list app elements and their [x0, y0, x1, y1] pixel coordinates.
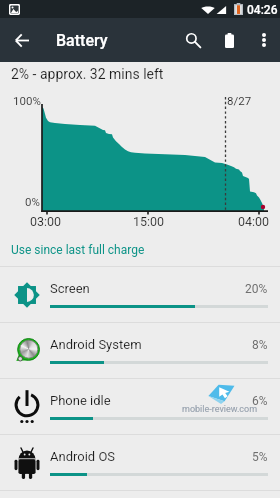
staticText: Battery — [56, 31, 108, 50]
staticText: 03:00 — [30, 214, 62, 229]
button[interactable]: Android System — [0, 323, 280, 379]
staticText: 6% — [252, 394, 268, 408]
staticText: Android System — [50, 337, 142, 352]
staticText: mobile-review.com — [182, 404, 258, 415]
staticText: Android OS — [50, 449, 116, 464]
button[interactable]: Battery saver — [214, 18, 244, 62]
staticText: 100% — [13, 94, 41, 107]
button[interactable]: Back — [0, 18, 42, 62]
button[interactable]: More options — [250, 18, 278, 62]
staticText: 04:00 — [238, 214, 270, 229]
staticText: 8/27 — [227, 94, 252, 107]
button[interactable]: Screen — [0, 267, 280, 323]
staticText: 04:26 — [247, 3, 278, 17]
button[interactable]: Search — [178, 18, 208, 62]
staticText: 0% — [25, 195, 40, 208]
button[interactable]: Android OS — [0, 435, 280, 491]
staticText: 8% — [252, 338, 268, 352]
button[interactable]: Phone idle — [0, 379, 280, 435]
staticText: Screen — [50, 281, 90, 296]
staticText: Phone idle — [50, 393, 111, 408]
staticText: 5% — [252, 450, 268, 464]
button[interactable]: Use since last full charge — [0, 236, 280, 267]
staticText: 2% - approx. 32 mins left — [11, 66, 164, 82]
staticText: Use since last full charge — [11, 243, 145, 257]
staticText: 20% — [245, 282, 268, 296]
staticText: 15:00 — [133, 214, 165, 229]
